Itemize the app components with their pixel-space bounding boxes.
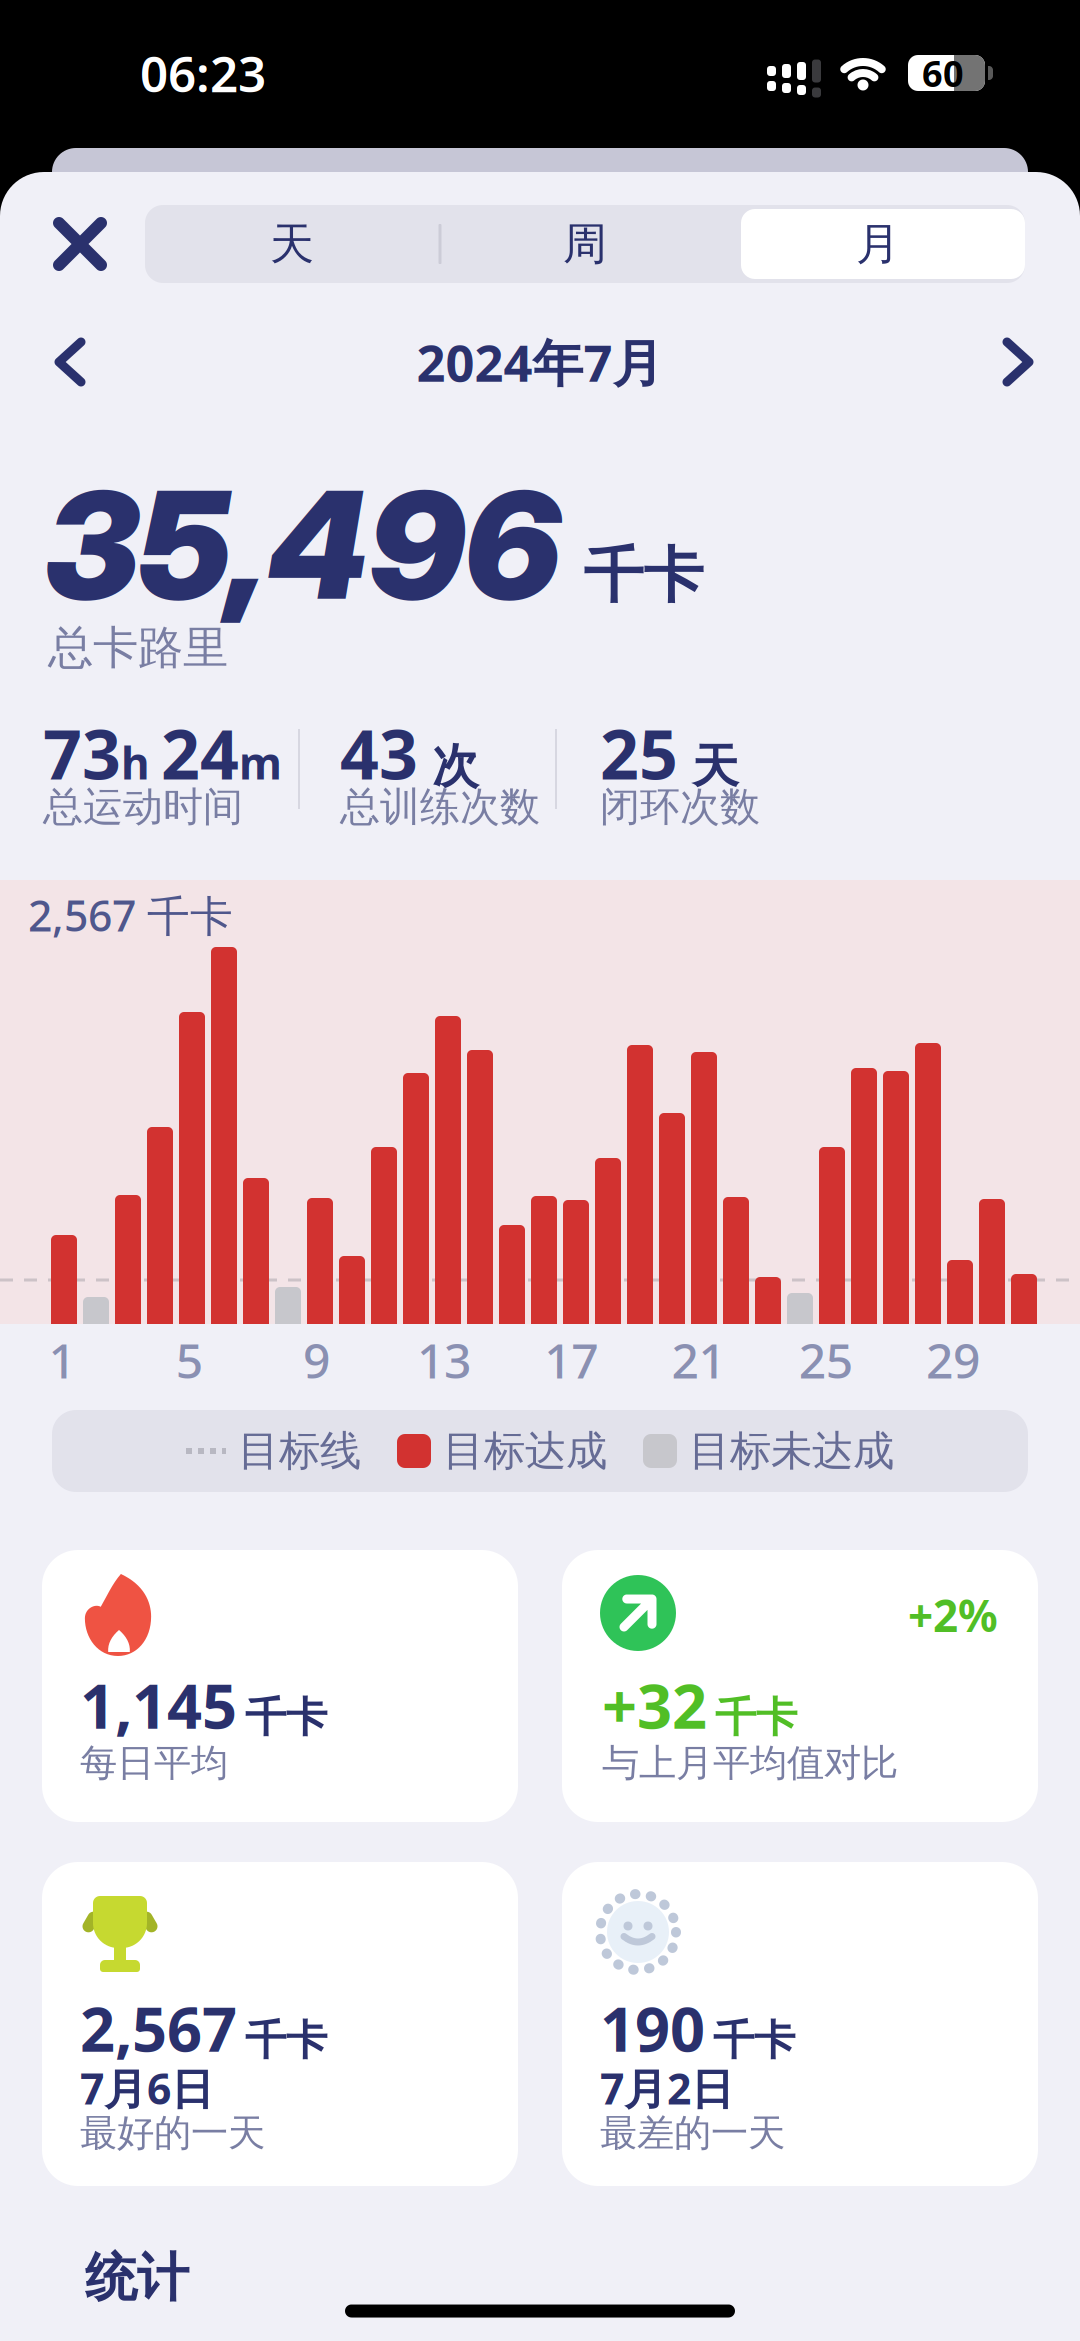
staticText: 7月2日 [600,2060,734,2116]
staticText: 总训练次数 [340,782,540,831]
staticText: 7月6日 [80,2060,214,2116]
staticText: 总运动时间 [43,782,243,831]
staticText: 与上月平均值对比 [602,1740,898,1786]
staticText: 2,567 千卡 [80,1987,327,2069]
staticText: 13 [417,1328,471,1392]
staticText: 17 [544,1328,598,1392]
staticText: 总卡路里 [48,620,228,676]
staticText: 每日平均 [80,1740,228,1786]
staticText: 2,567 千卡 [28,887,233,943]
staticText: 天 [270,217,314,271]
staticText: 5 [176,1328,203,1392]
staticText: 1,145 千卡 [80,1664,327,1746]
staticText: +2% [908,1586,998,1644]
staticText: 目标达成 [443,1426,607,1476]
staticText: 2024年7月 [416,328,663,396]
staticText: 月 [856,217,900,271]
staticText: 最好的一天 [80,2110,265,2156]
staticText: 25 [799,1328,853,1392]
staticText: 最差的一天 [600,2110,785,2156]
staticText: 190 千卡 [600,1987,795,2069]
button[interactable]: Next month [991,326,1045,398]
button[interactable]: Previous month [43,326,97,398]
staticText: 29 [926,1328,980,1392]
staticText: 千卡 [583,539,703,612]
staticText: 25 天 [600,708,739,798]
button[interactable]: 月 [733,205,1023,283]
staticText: 周 [563,217,607,271]
staticText: 06:23 [140,40,266,106]
staticText: 9 [303,1328,330,1392]
staticText: 统计 [85,2246,189,2310]
staticText: 21 [671,1328,725,1392]
staticText: 目标线 [238,1426,361,1476]
staticText: 闭环次数 [600,782,760,831]
staticText: +32 千卡 [602,1664,797,1746]
staticText: 60 [922,49,964,97]
button[interactable]: Close [50,214,110,274]
staticText: 1 [48,1328,75,1392]
staticText: 73h 24m [43,708,282,798]
staticText: 目标未达成 [689,1426,894,1476]
staticText: 43 次 [340,708,479,798]
button[interactable]: 天 [147,205,437,283]
staticText: 35,496 [44,455,559,635]
button[interactable]: 周 [440,205,730,283]
